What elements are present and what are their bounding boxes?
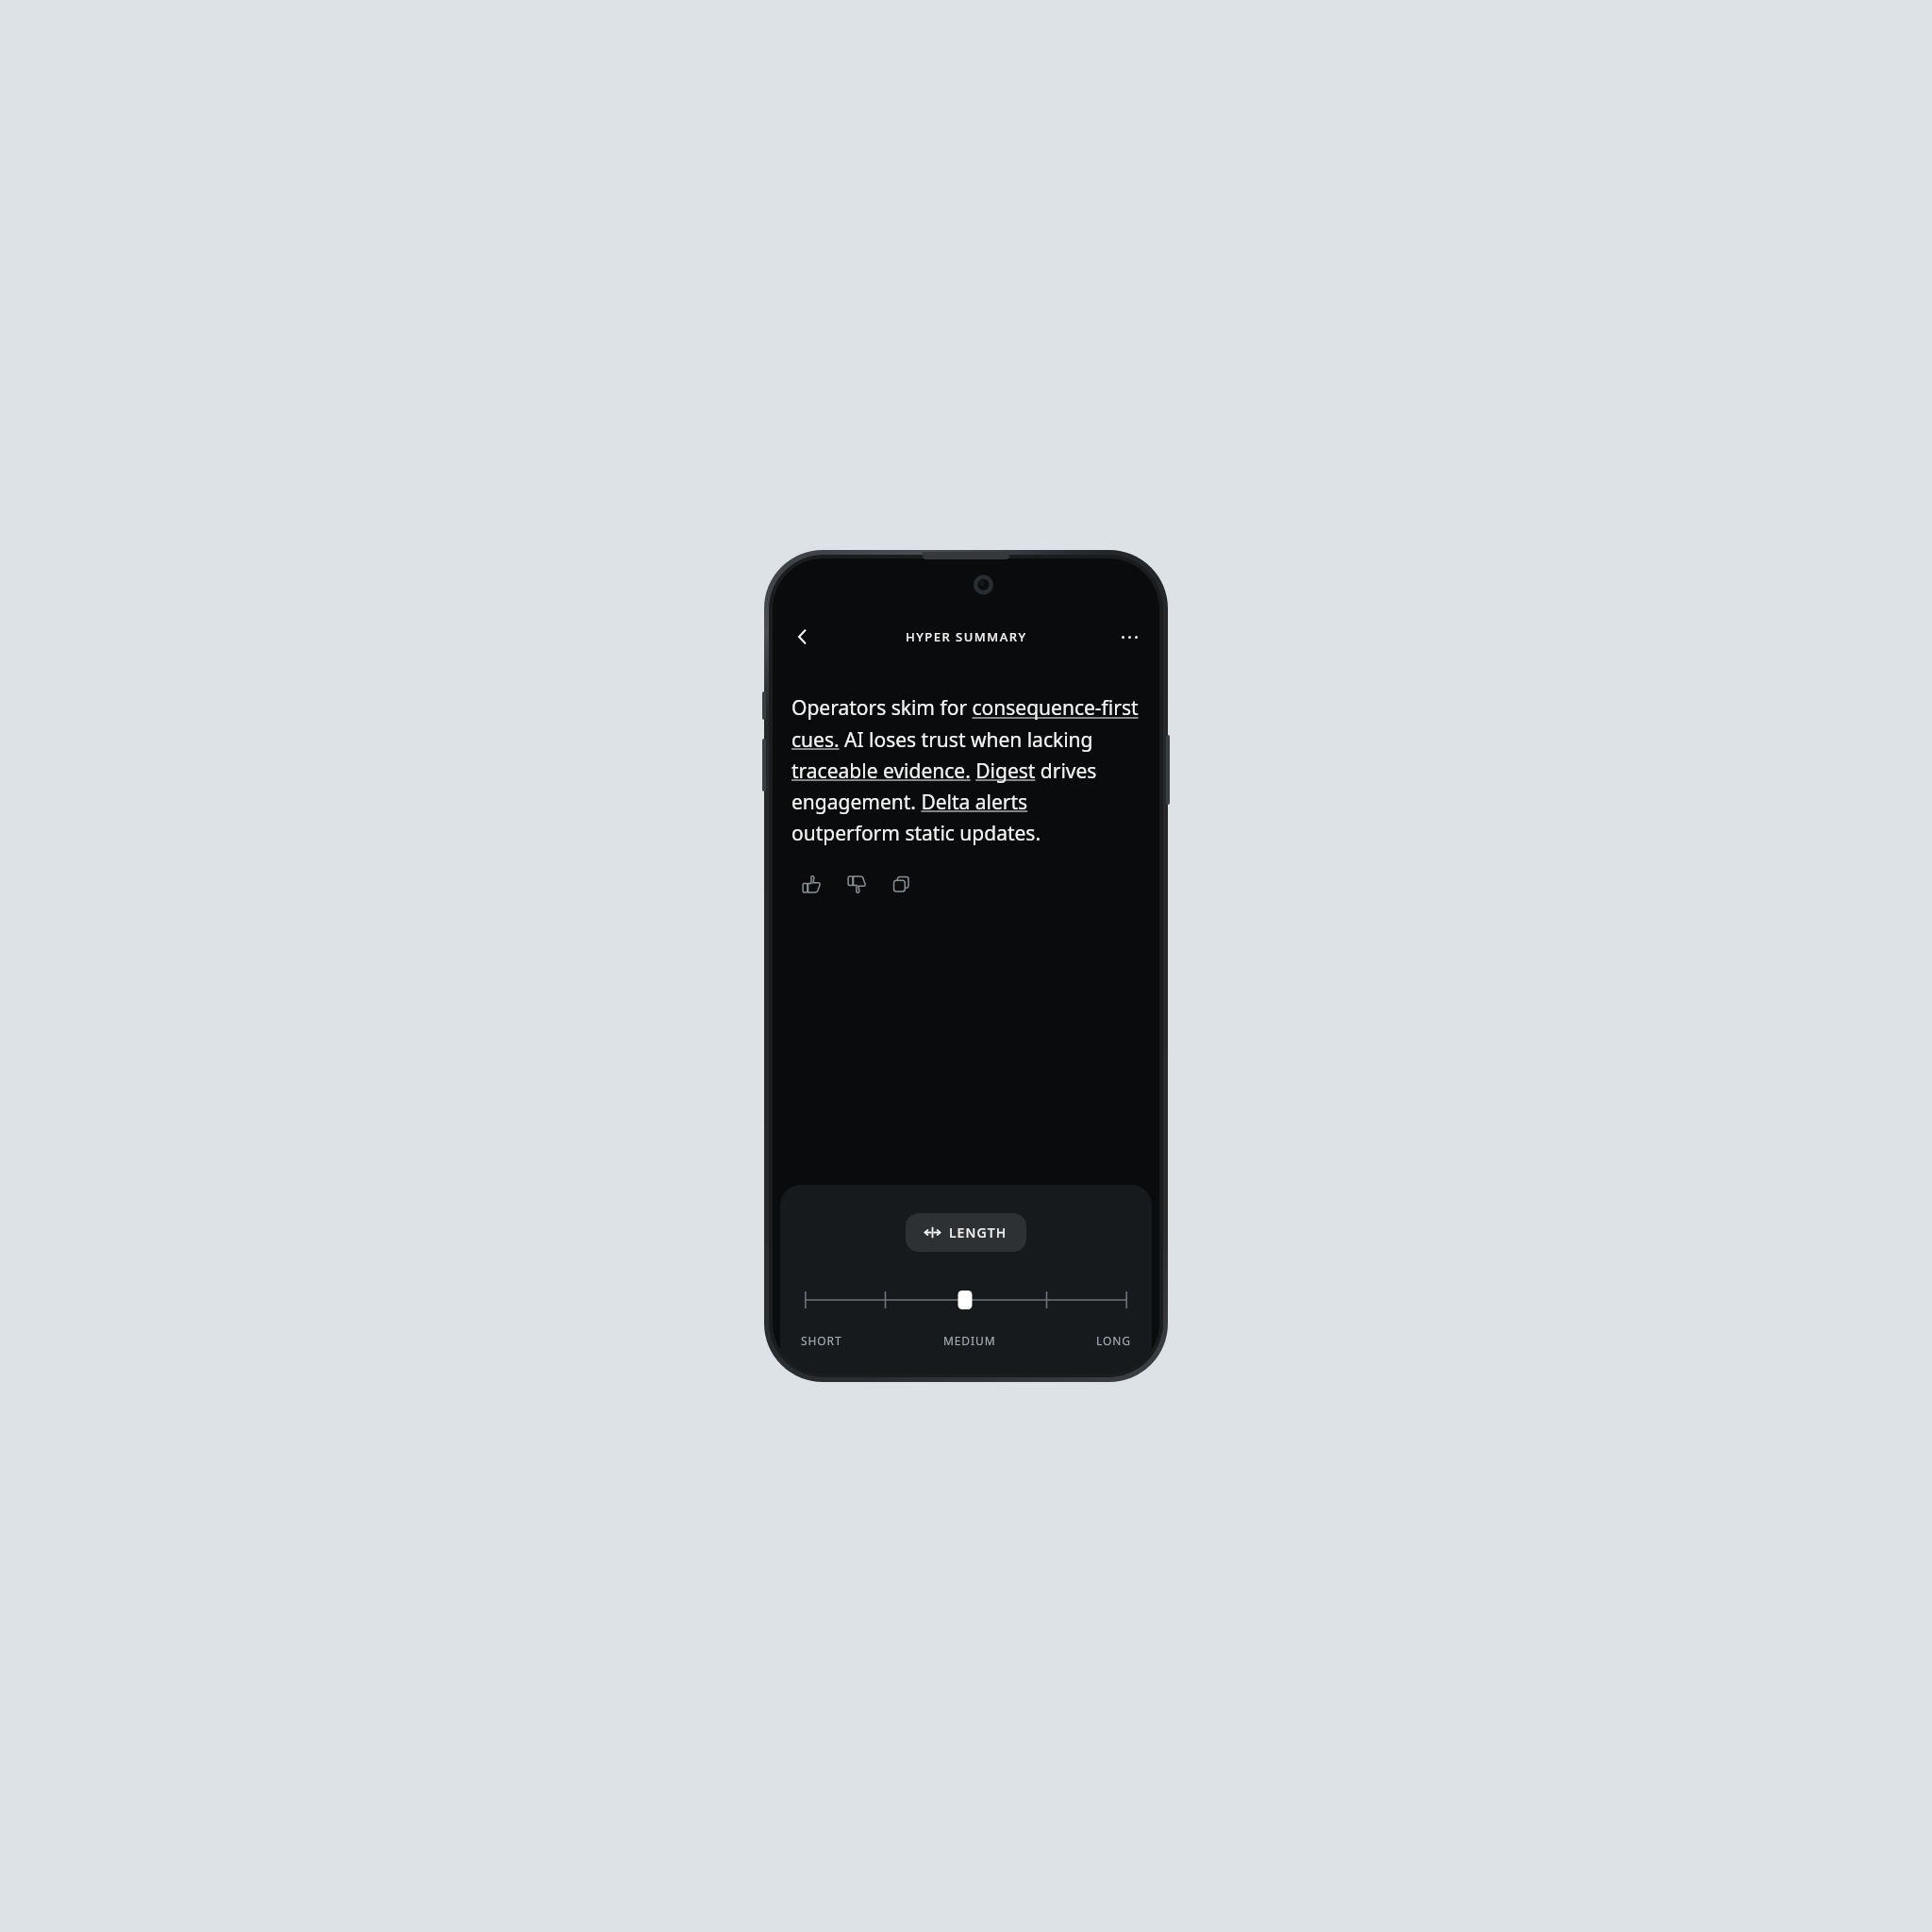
button[interactable]: LONG [1096, 1333, 1131, 1348]
button[interactable]: Length slider [805, 1288, 1127, 1312]
staticText: HYPER SUMMARY [906, 628, 1027, 645]
button[interactable]: Like [790, 863, 831, 905]
staticText: LENGTH [949, 1224, 1008, 1241]
button[interactable]: Back [782, 616, 824, 658]
button[interactable]: Dislike [835, 863, 876, 905]
button[interactable]: More options [1108, 616, 1150, 658]
button[interactable]: LENGTH [906, 1213, 1026, 1252]
staticText: Operators skim for consequence-first cue… [791, 694, 1141, 846]
button[interactable]: MEDIUM [943, 1333, 996, 1348]
button[interactable]: SHORT [801, 1333, 842, 1348]
button[interactable]: Copy [880, 863, 922, 905]
